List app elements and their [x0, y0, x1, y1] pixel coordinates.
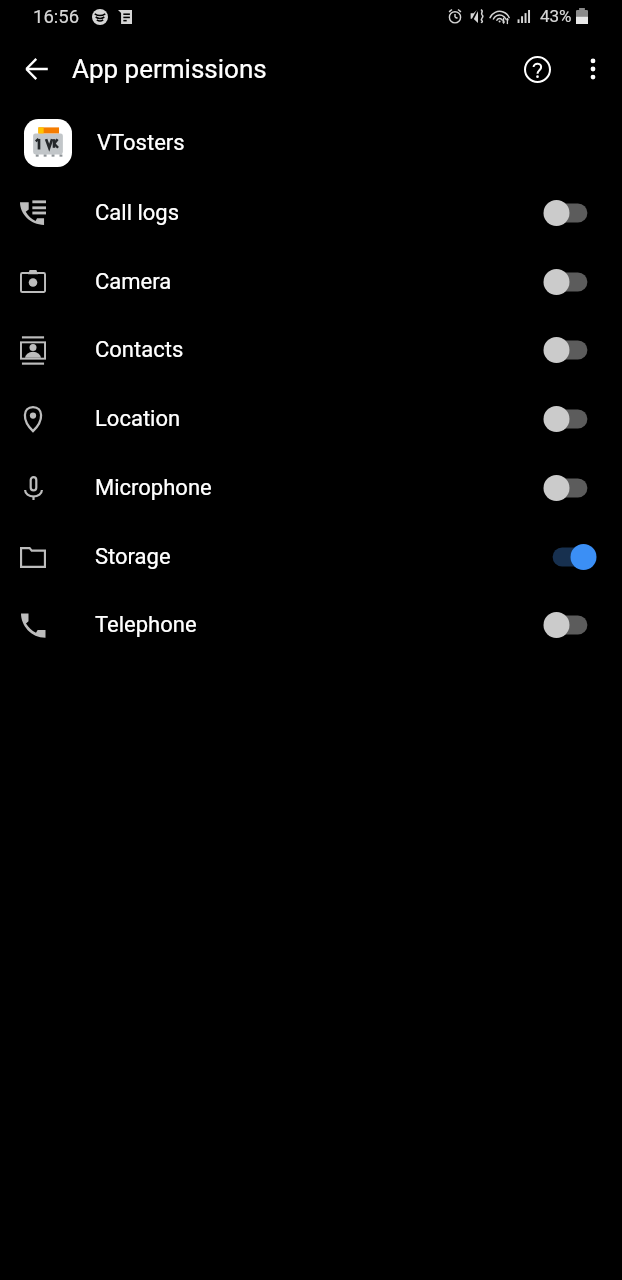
button[interactable]: Help	[513, 45, 561, 93]
button[interactable]: Storage on	[543, 540, 597, 574]
button[interactable]: Call logs	[0, 178, 622, 247]
staticText: 16:56	[33, 6, 80, 28]
button[interactable]: Storage	[0, 522, 622, 591]
staticText: Microphone	[95, 475, 212, 501]
button[interactable]: Camera off	[543, 265, 597, 299]
button[interactable]: Location	[0, 384, 622, 453]
staticText: Telephone	[95, 612, 197, 638]
button[interactable]: Back	[13, 45, 61, 93]
button[interactable]: VTosters	[0, 108, 622, 177]
button[interactable]: Telephone off	[543, 608, 597, 642]
button[interactable]: Location off	[543, 402, 597, 436]
staticText: VTosters	[97, 130, 185, 156]
staticText: App permissions	[72, 54, 267, 84]
button[interactable]: More options	[569, 45, 617, 93]
staticText: 43%	[540, 6, 572, 26]
staticText: Location	[95, 406, 181, 432]
staticText: Call logs	[95, 200, 180, 226]
button[interactable]: Contacts	[0, 315, 622, 384]
staticText: Storage	[95, 544, 171, 570]
staticText: Camera	[95, 269, 172, 295]
button[interactable]: Contacts off	[543, 333, 597, 367]
staticText: Contacts	[95, 337, 184, 363]
button[interactable]: Microphone off	[543, 471, 597, 505]
button[interactable]: Microphone	[0, 453, 622, 522]
button[interactable]: Telephone	[0, 590, 622, 659]
button[interactable]: Call logs off	[543, 196, 597, 230]
button[interactable]: Camera	[0, 247, 622, 316]
